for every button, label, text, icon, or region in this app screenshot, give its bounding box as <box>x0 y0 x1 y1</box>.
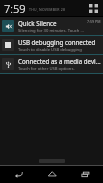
staticText: Touch to disable USB debugging <box>18 47 82 53</box>
staticText: THU, NOVEMBER 28 <box>29 7 66 12</box>
staticText: Touch for other USB options. <box>18 66 75 72</box>
button[interactable]: USB debugging connected <box>0 36 103 54</box>
button[interactable]: Home <box>37 166 67 183</box>
staticText: 7:59 PM <box>87 19 101 24</box>
staticText: 7:59 <box>4 1 26 16</box>
button[interactable]: Recent apps <box>70 166 100 183</box>
button[interactable]: Connected as a media device <box>0 55 103 73</box>
button[interactable]: Quick settings <box>87 2 100 15</box>
button[interactable]: Back <box>3 166 33 183</box>
staticText: Silencing for 30 minutes. Touch to cance… <box>18 28 85 34</box>
button[interactable]: Quick Silence <box>0 17 103 35</box>
staticText: Quick Silence <box>18 19 57 27</box>
staticText: Connected as a media device <box>18 57 101 65</box>
staticText: USB debugging connected <box>18 38 96 46</box>
